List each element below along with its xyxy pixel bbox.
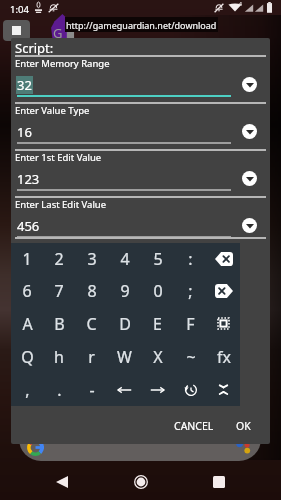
- staticText: D: [119, 313, 131, 335]
- button[interactable]: OK: [229, 414, 258, 438]
- other: Hide keyboard: [218, 382, 229, 397]
- other: Delete: [215, 284, 233, 298]
- button[interactable]: ~: [174, 340, 207, 373]
- other: Move left: [117, 385, 132, 395]
- staticText: Enter Last Edit Value: [15, 198, 107, 211]
- button[interactable]: Recent apps: [202, 465, 236, 499]
- staticText: ;: [188, 280, 193, 302]
- button[interactable]: 3: [75, 243, 108, 275]
- staticText: 9: [120, 280, 130, 302]
- button[interactable]: 6: [11, 275, 43, 307]
- button[interactable]: 1: [11, 243, 43, 275]
- staticText: 32: [17, 76, 32, 94]
- button[interactable]: X: [141, 340, 174, 373]
- button[interactable]: Show options for Enter Last Edit Value: [242, 218, 257, 233]
- staticText: 3: [87, 248, 97, 270]
- button[interactable]: CANCEL: [167, 414, 221, 438]
- staticText: 5: [153, 248, 163, 270]
- staticText: C: [86, 313, 97, 335]
- button[interactable]: Show options for Enter Value Type: [242, 124, 257, 139]
- button[interactable]: Move left: [108, 373, 141, 406]
- button[interactable]: B: [43, 307, 75, 340]
- button[interactable]: Delete: [207, 275, 240, 307]
- staticText: r: [88, 346, 95, 368]
- staticText: OK: [236, 419, 251, 433]
- staticText: Q: [21, 346, 34, 368]
- staticText: G: [53, 24, 63, 42]
- staticText: A: [22, 313, 33, 335]
- staticText: 16: [17, 123, 32, 141]
- staticText: :: [188, 248, 193, 270]
- staticText: E: [153, 313, 162, 335]
- staticText: Enter Memory Range: [15, 57, 110, 70]
- button[interactable]: 7: [43, 275, 75, 307]
- button[interactable]: 5: [141, 243, 174, 275]
- staticText: B: [54, 313, 65, 335]
- button[interactable]: 4: [108, 243, 141, 275]
- button[interactable]: Stop: [3, 20, 30, 41]
- button[interactable]: ;: [174, 275, 207, 307]
- other: Move right: [150, 385, 165, 395]
- staticText: 7: [54, 280, 64, 302]
- staticText: 4: [120, 248, 130, 270]
- staticText: 123: [17, 170, 40, 188]
- button[interactable]: Show options for Enter 1st Edit Value: [242, 171, 257, 186]
- button[interactable]: Back: [45, 465, 79, 499]
- other: Backspace: [215, 252, 233, 266]
- staticText: X: [153, 346, 163, 368]
- staticText: 1:04: [10, 3, 29, 16]
- staticText: ~: [186, 346, 196, 368]
- button[interactable]: fx: [207, 340, 240, 373]
- button[interactable]: Home: [124, 465, 158, 499]
- staticText: 456: [17, 217, 40, 235]
- button[interactable]: Q: [11, 340, 43, 373]
- button[interactable]: Hide keyboard: [207, 373, 240, 406]
- button[interactable]: 9: [108, 275, 141, 307]
- staticText: CANCEL: [174, 419, 214, 433]
- staticText: ,: [25, 379, 30, 401]
- button[interactable]: C: [75, 307, 108, 340]
- button[interactable]: -: [75, 373, 108, 406]
- button[interactable]: :: [174, 243, 207, 275]
- button[interactable]: ,: [11, 373, 43, 406]
- button[interactable]: History: [174, 373, 207, 406]
- button[interactable]: Show options for Enter Memory Range: [242, 77, 257, 92]
- staticText: -: [89, 379, 95, 401]
- staticText: F: [186, 313, 195, 335]
- staticText: h: [54, 346, 64, 368]
- staticText: fx: [217, 346, 231, 368]
- staticText: 4: [239, 1, 242, 8]
- button[interactable]: h: [43, 340, 75, 373]
- button[interactable]: D: [108, 307, 141, 340]
- button[interactable]: r: [75, 340, 108, 373]
- staticText: http://gameguardian.net/download: [66, 19, 217, 31]
- staticText: 8: [87, 280, 97, 302]
- staticText: 1: [22, 248, 32, 270]
- button[interactable]: .: [43, 373, 75, 406]
- staticText: Enter 1st Edit Value: [15, 151, 102, 164]
- button[interactable]: W: [108, 340, 141, 373]
- button[interactable]: Backspace: [207, 243, 240, 275]
- staticText: 6: [22, 280, 32, 302]
- other: History: [184, 383, 198, 397]
- staticText: 2: [54, 248, 64, 270]
- staticText: Script:: [15, 39, 54, 57]
- staticText: .: [57, 379, 62, 401]
- button[interactable]: 0: [141, 275, 174, 307]
- button[interactable]: Select all: [207, 307, 240, 340]
- button[interactable]: Move right: [141, 373, 174, 406]
- staticText: W: [117, 346, 132, 368]
- staticText: 0: [153, 280, 163, 302]
- button[interactable]: E: [141, 307, 174, 340]
- button[interactable]: F: [174, 307, 207, 340]
- button[interactable]: 2: [43, 243, 75, 275]
- other: Select all: [217, 317, 230, 330]
- staticText: Enter Value Type: [15, 104, 90, 117]
- button[interactable]: A: [11, 307, 43, 340]
- button[interactable]: 8: [75, 275, 108, 307]
